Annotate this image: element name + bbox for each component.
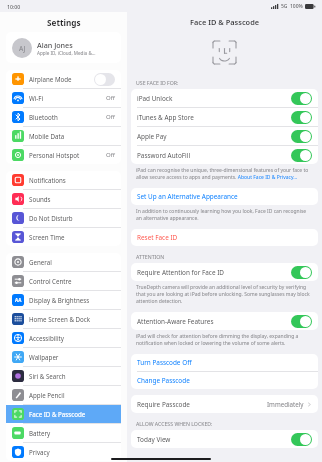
staticText: Alan Jones: [37, 40, 73, 50]
button[interactable]: iTunes & App Store: [131, 108, 318, 126]
button[interactable]: AA: [6, 291, 121, 309]
staticText: Off: [106, 94, 115, 102]
button[interactable]: Control Centre: [6, 272, 121, 290]
staticText: iTunes & App Store: [137, 113, 291, 122]
button[interactable]: Turn Passcode Off: [131, 354, 318, 371]
button[interactable]: Toggle: [291, 130, 312, 143]
button[interactable]: iPad Unlock: [131, 89, 318, 107]
staticText: Immediately: [267, 400, 304, 408]
staticText: Sounds: [29, 195, 115, 203]
staticText: Apple Pay: [137, 132, 291, 141]
staticText: Apple Pencil: [29, 391, 115, 399]
button[interactable]: Bluetooth: [6, 108, 121, 126]
staticText: Privacy: [29, 448, 115, 456]
staticText: Off: [106, 113, 115, 121]
button[interactable]: Face ID & Passcode: [6, 405, 121, 423]
staticText: AJ: [19, 44, 26, 53]
staticText: Personal Hotspot: [29, 151, 106, 159]
staticText: In addition to continuously learning how…: [136, 208, 313, 222]
staticText: Notifications: [29, 176, 115, 184]
button[interactable]: Change Passcode: [131, 372, 318, 389]
button[interactable]: Password AutoFill: [131, 146, 318, 164]
button[interactable]: Notifications: [6, 171, 121, 189]
staticText: Off: [106, 151, 115, 159]
button[interactable]: Airplane Mode: [6, 70, 121, 88]
button[interactable]: Battery: [6, 424, 121, 442]
staticText: Set Up an Alternative Appearance: [137, 192, 238, 201]
button[interactable]: Toggle: [291, 433, 312, 446]
button[interactable]: Sounds: [6, 190, 121, 208]
staticText: Apple ID, iCloud, Media &...: [37, 50, 96, 56]
staticText: 5G: [281, 3, 288, 10]
button[interactable]: Do Not Disturb: [6, 209, 121, 227]
staticText: Today View: [137, 435, 291, 444]
staticText: USE FACE ID FOR:: [136, 79, 179, 86]
button[interactable]: Apple Pay: [131, 127, 318, 145]
staticText: TrueDepth camera will provide an additio…: [136, 284, 313, 305]
button[interactable]: Screen Time: [6, 228, 121, 246]
staticText: Bluetooth: [29, 113, 106, 121]
staticText: Screen Time: [29, 233, 115, 241]
button[interactable]: Apple Pencil: [6, 386, 121, 404]
button[interactable]: Toggle: [94, 73, 115, 86]
button[interactable]: Toggle: [291, 149, 312, 162]
button[interactable]: Attention-Aware Features: [131, 312, 318, 330]
staticText: Password AutoFill: [137, 151, 291, 160]
staticText: Settings: [47, 17, 81, 28]
staticText: ALLOW ACCESS WHEN LOCKED:: [136, 420, 213, 427]
button[interactable]: Wi-Fi: [6, 89, 121, 107]
button[interactable]: Reset Face ID: [131, 229, 318, 246]
button[interactable]: General: [6, 253, 121, 271]
staticText: Change Passcode: [137, 376, 190, 385]
staticText: Wallpaper: [29, 353, 115, 361]
button[interactable]: Set Up an Alternative Appearance: [131, 188, 318, 205]
staticText: Battery: [29, 429, 115, 437]
button[interactable]: Home Screen & Dock: [6, 310, 121, 328]
button[interactable]: Toggle: [291, 111, 312, 124]
staticText: General: [29, 258, 115, 266]
staticText: iPad Unlock: [137, 94, 291, 103]
staticText: Mobile Data: [29, 132, 115, 140]
button[interactable]: Accessibility: [6, 329, 121, 347]
staticText: Accessibility: [29, 334, 115, 342]
staticText: Airplane Mode: [29, 75, 94, 83]
button[interactable]: Personal Hotspot: [6, 146, 121, 164]
button[interactable]: Privacy: [6, 443, 121, 461]
button[interactable]: Toggle: [291, 266, 312, 279]
button[interactable]: Require Attention for Face ID: [131, 263, 318, 281]
staticText: Attention-Aware Features: [137, 317, 291, 326]
staticText: 10:00: [7, 3, 21, 10]
staticText: Turn Passcode Off: [137, 358, 192, 367]
staticText: Face ID & Passcode: [190, 17, 260, 27]
staticText: Siri & Search: [29, 372, 115, 380]
button[interactable]: Toggle: [291, 92, 312, 105]
staticText: Reset Face ID: [137, 233, 178, 242]
staticText: iPad will check for attention before dim…: [136, 333, 313, 347]
staticText: ATTENTION: [136, 253, 165, 260]
staticText: 100%: [290, 3, 303, 10]
staticText: Wi-Fi: [29, 94, 106, 102]
staticText: Display & Brightness: [29, 296, 90, 304]
staticText: iPad can recognise the unique, three-dim…: [136, 167, 313, 181]
button[interactable]: Siri & Search: [6, 367, 121, 385]
staticText: Face ID & Passcode: [29, 410, 115, 418]
staticText: Require Attention for Face ID: [137, 268, 291, 277]
staticText: Control Centre: [29, 277, 115, 285]
staticText: Home Screen & Dock: [29, 315, 115, 323]
button[interactable]: Require Passcode: [131, 395, 318, 413]
staticText: AA: [15, 297, 22, 303]
staticText: Require Passcode: [137, 400, 267, 409]
button[interactable]: AJ: [6, 32, 121, 63]
button[interactable]: Today View: [131, 430, 318, 448]
button[interactable]: Wallpaper: [6, 348, 121, 366]
staticText: Do Not Disturb: [29, 214, 115, 222]
button[interactable]: Toggle: [291, 315, 312, 328]
button[interactable]: Mobile Data: [6, 127, 121, 145]
